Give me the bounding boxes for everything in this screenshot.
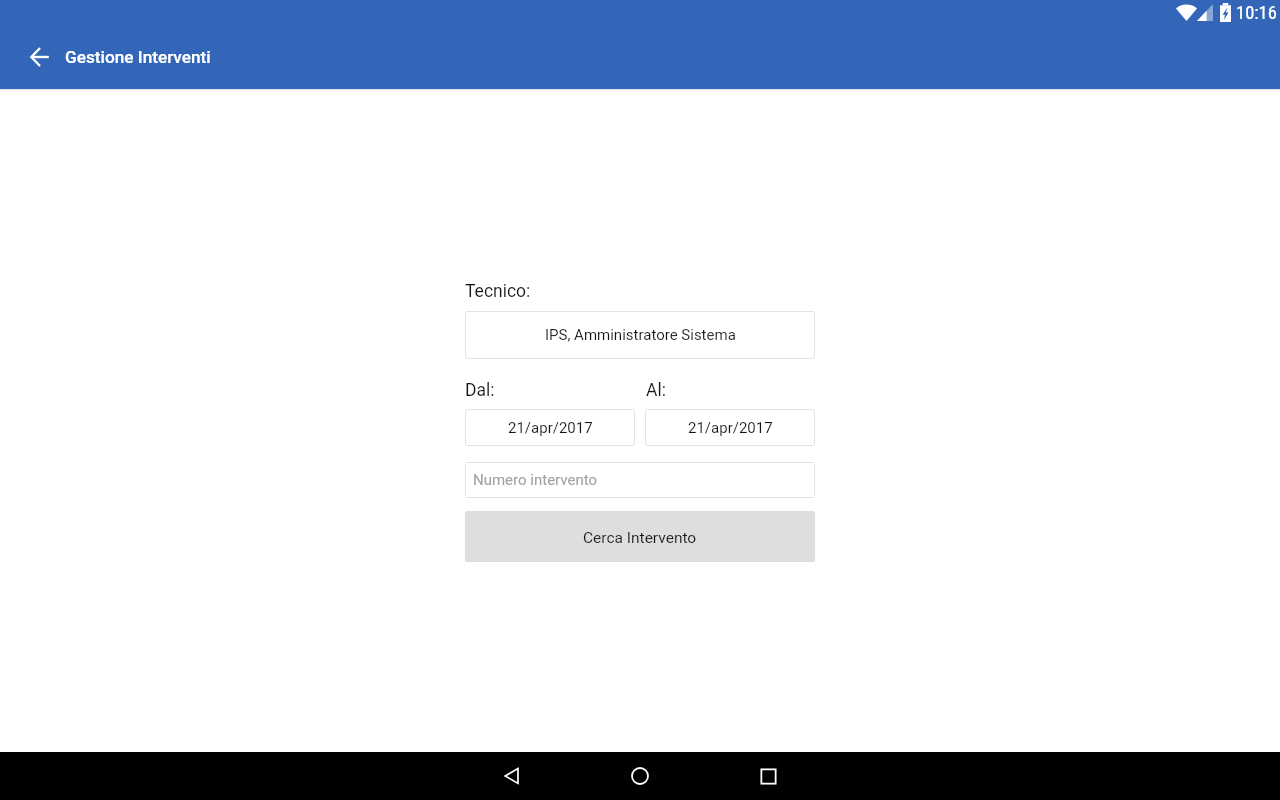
staticText: Numero intervento <box>473 471 598 489</box>
button[interactable]: Back <box>16 33 64 81</box>
staticText: 21/apr/2017 <box>688 419 773 437</box>
button[interactable]: Numero intervento <box>465 462 815 498</box>
staticText: Dal: <box>465 380 495 401</box>
button[interactable]: 21/apr/2017 <box>645 409 815 446</box>
staticText: Cerca Intervento <box>583 529 697 547</box>
staticText: IPS, Amministratore Sistema <box>545 326 736 344</box>
staticText: 10:16 <box>1236 2 1277 24</box>
button[interactable]: 21/apr/2017 <box>465 409 635 446</box>
staticText: Gestione Interventi <box>65 47 211 67</box>
staticText: 21/apr/2017 <box>508 419 593 437</box>
button[interactable]: IPS, Amministratore Sistema <box>465 311 815 359</box>
staticText: Tecnico: <box>465 281 531 302</box>
button[interactable]: Back <box>484 752 540 800</box>
button[interactable]: Recents <box>740 752 796 800</box>
staticText: Al: <box>646 380 666 401</box>
button[interactable]: Cerca Intervento <box>465 511 815 562</box>
button[interactable]: Home <box>612 752 668 800</box>
